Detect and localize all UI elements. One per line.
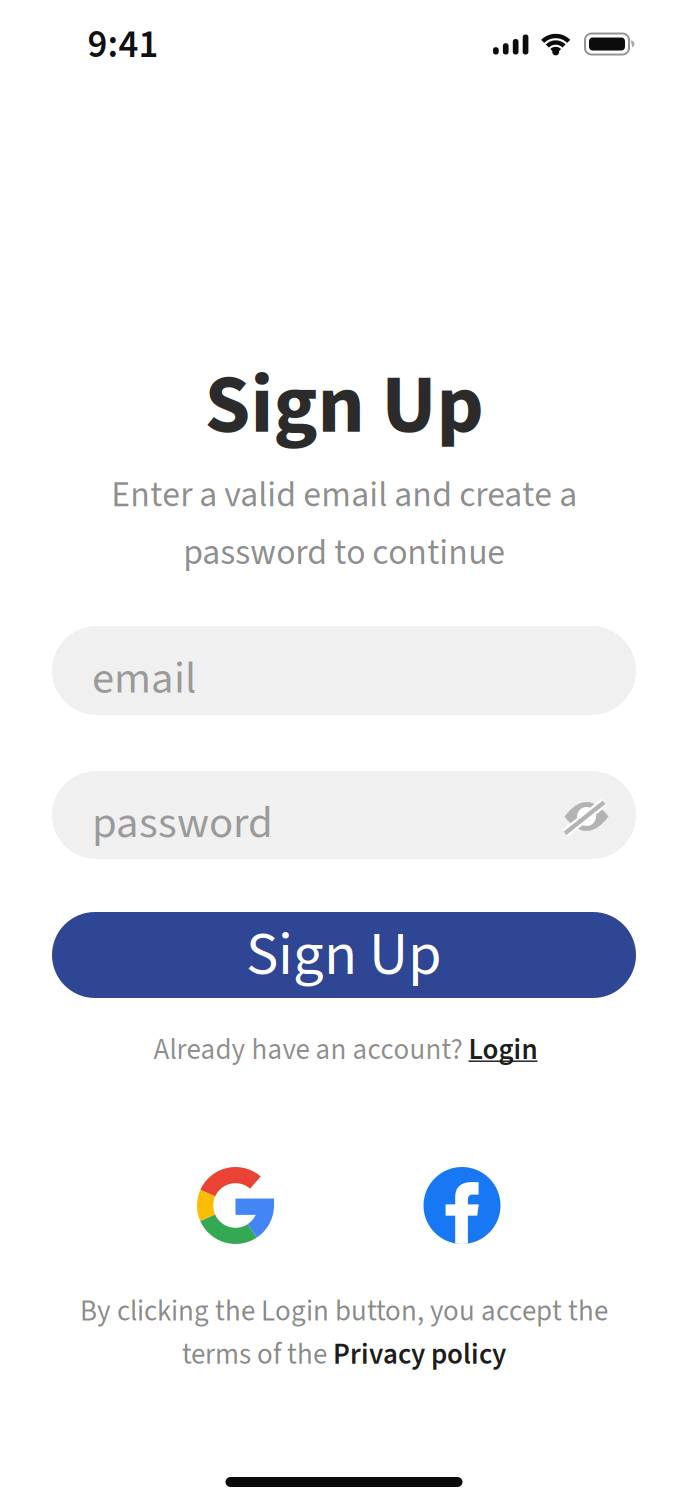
staticText: Login [468,1029,537,1071]
staticText: password [92,791,273,855]
staticText: Privacy policy [333,1334,506,1375]
button[interactable]: Already have an account? [153,1029,537,1071]
staticText: Sign Up [246,912,442,998]
staticText: Enter a valid email and create a passwor… [111,470,577,578]
staticText: Already have an account? [153,1029,468,1071]
staticText: By clicking the Login button, you accept… [80,1291,608,1332]
button[interactable]: Sign Up [52,912,636,998]
staticText: Sign Up [204,349,483,463]
staticText: terms of the [182,1334,333,1375]
button[interactable]: Sign up with Facebook [423,1167,500,1244]
button[interactable]: email [52,626,636,715]
button[interactable]: Sign up with Google [196,1166,274,1244]
staticText: 9:41 [87,18,158,72]
staticText: email [92,647,196,710]
button[interactable]: password [52,771,636,859]
